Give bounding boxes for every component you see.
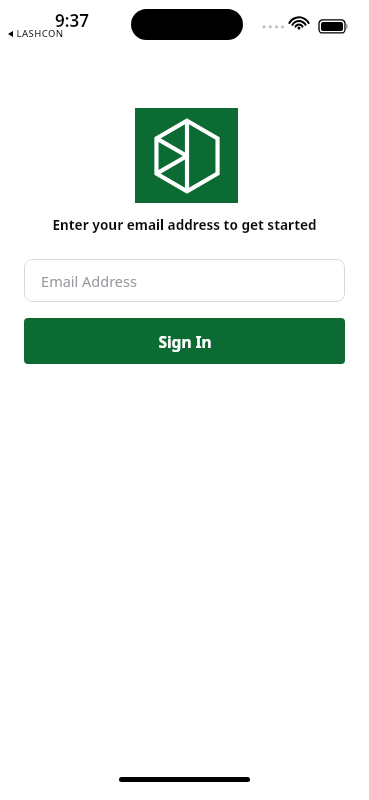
staticText: LASHCON (16, 27, 64, 40)
staticText: 9:37 (55, 9, 89, 32)
staticText: Email Address (41, 271, 137, 291)
button[interactable]: Email Address (24, 259, 345, 302)
button[interactable]: Sign In (24, 318, 345, 364)
other: App logo (151, 119, 223, 193)
staticText: Sign In (158, 331, 212, 352)
staticText: Enter your email address to get started (52, 216, 317, 234)
